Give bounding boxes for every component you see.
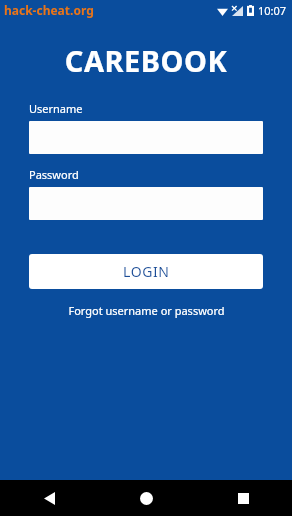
button[interactable]: Back	[0, 480, 98, 516]
staticText: 10:07	[258, 3, 287, 18]
staticText: hack-cheat.org	[4, 2, 94, 18]
button[interactable]: Recent apps	[195, 480, 292, 516]
button[interactable]: Forgot username or password	[0, 300, 292, 321]
button[interactable]: LOGIN	[29, 254, 263, 289]
staticText: CAREBOOK	[0, 41, 292, 80]
staticText: Password	[29, 167, 79, 182]
staticText: Username	[29, 101, 83, 116]
staticText: LOGIN	[123, 262, 170, 281]
button[interactable]: Home	[98, 480, 195, 516]
staticText: Forgot username or password	[68, 303, 225, 318]
